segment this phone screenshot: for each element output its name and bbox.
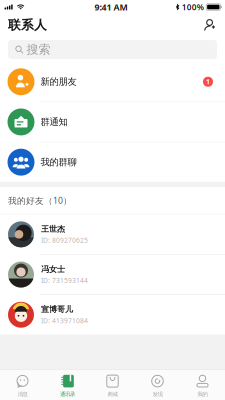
- button[interactable]: 宣博哥儿: [0, 295, 225, 334]
- staticText: 新的朋友: [40, 76, 76, 88]
- button[interactable]: 冯女士: [0, 255, 225, 295]
- staticText: ID: 809270625: [41, 236, 88, 245]
- staticText: 我的好友（10）: [8, 194, 72, 206]
- button[interactable]: 通讯录: [45, 370, 90, 400]
- staticText: 王世杰: [41, 224, 65, 234]
- staticText: 群通知: [40, 116, 67, 128]
- staticText: 1: [206, 77, 210, 86]
- staticText: 消息: [17, 391, 27, 398]
- staticText: 宣博哥儿: [41, 304, 73, 314]
- button[interactable]: 商城: [90, 370, 135, 400]
- staticText: 我的: [197, 391, 207, 398]
- button[interactable]: 我的: [180, 370, 225, 400]
- button[interactable]: 新的朋友: [0, 62, 225, 102]
- staticText: 冯女士: [41, 264, 65, 274]
- staticText: 9:41 AM: [94, 1, 127, 13]
- button[interactable]: Add contact: [199, 15, 220, 35]
- staticText: 联系人: [8, 17, 47, 33]
- staticText: 商城: [107, 391, 117, 398]
- staticText: 发现: [152, 391, 162, 398]
- button[interactable]: 我的群聊: [0, 142, 225, 182]
- staticText: 100%: [182, 1, 204, 13]
- staticText: 通讯录: [60, 391, 75, 398]
- button[interactable]: 群通知: [0, 102, 225, 142]
- button[interactable]: 发现: [135, 370, 180, 400]
- staticText: 搜索: [26, 42, 50, 57]
- staticText: ID: 413971084: [41, 316, 88, 325]
- button[interactable]: 王世杰: [0, 215, 225, 255]
- button[interactable]: 搜索: [8, 40, 217, 59]
- staticText: 我的群聊: [40, 156, 76, 168]
- button[interactable]: 消息: [0, 370, 45, 400]
- staticText: ID: 731593144: [41, 276, 88, 285]
